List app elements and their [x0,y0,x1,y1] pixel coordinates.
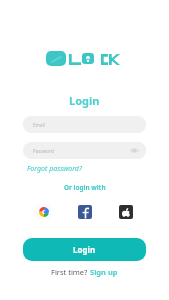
button[interactable]: Sign in with Apple [118,204,133,219]
button[interactable]: Show password [129,145,140,156]
button[interactable]: Login [23,238,146,261]
button[interactable]: Sign in with Google [36,204,51,219]
staticText: First time? [51,267,90,277]
staticText: Login [69,93,100,108]
staticText: Email [33,122,45,128]
staticText: Password [33,148,54,154]
button[interactable]: Forgot password? [27,164,82,174]
staticText: Or login with [64,183,106,192]
button[interactable]: Email [23,116,146,133]
button[interactable]: Password [23,142,146,159]
button[interactable]: Sign in with Facebook [77,204,92,219]
staticText: Sign up [90,267,118,277]
staticText: Login [73,244,96,255]
button[interactable]: First time? [51,267,118,277]
